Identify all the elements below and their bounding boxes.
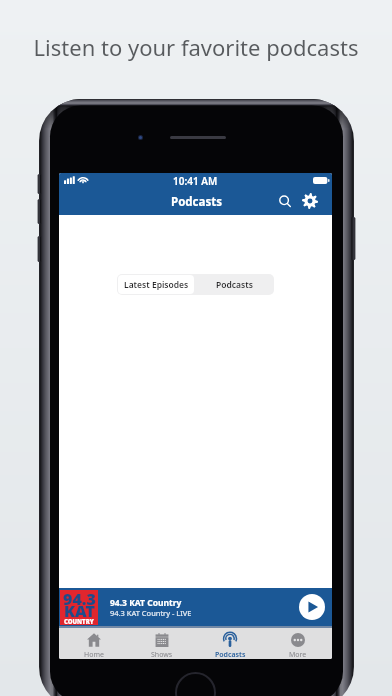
staticText: Listen to your favorite podcasts xyxy=(0,32,392,62)
staticText: 94.3 KAT Country - LIVE xyxy=(110,608,192,618)
staticText: 10:41 AM xyxy=(173,174,218,188)
staticText: Latest Episodes xyxy=(124,279,189,291)
button[interactable]: Shows xyxy=(128,628,196,659)
staticText: Podcasts xyxy=(215,650,246,659)
staticText: KAT xyxy=(64,600,95,622)
staticText: Home xyxy=(84,650,104,659)
button[interactable]: Podcasts xyxy=(195,274,274,295)
button[interactable]: Home xyxy=(59,628,128,659)
button[interactable]: Settings xyxy=(299,190,321,212)
button[interactable]: Play xyxy=(299,594,325,620)
staticText: Podcasts xyxy=(171,194,222,210)
staticText: More xyxy=(289,650,307,659)
button[interactable]: Podcasts xyxy=(196,628,264,659)
button[interactable]: Latest Episodes xyxy=(118,275,194,294)
staticText: COUNTRY xyxy=(64,618,94,626)
staticText: 94.3 xyxy=(63,588,96,610)
staticText: Podcasts xyxy=(216,279,253,291)
staticText: 94.3 KAT Country xyxy=(110,597,182,609)
staticText: Shows xyxy=(151,650,173,659)
button[interactable]: More xyxy=(264,628,332,659)
button[interactable]: Search xyxy=(274,190,296,212)
